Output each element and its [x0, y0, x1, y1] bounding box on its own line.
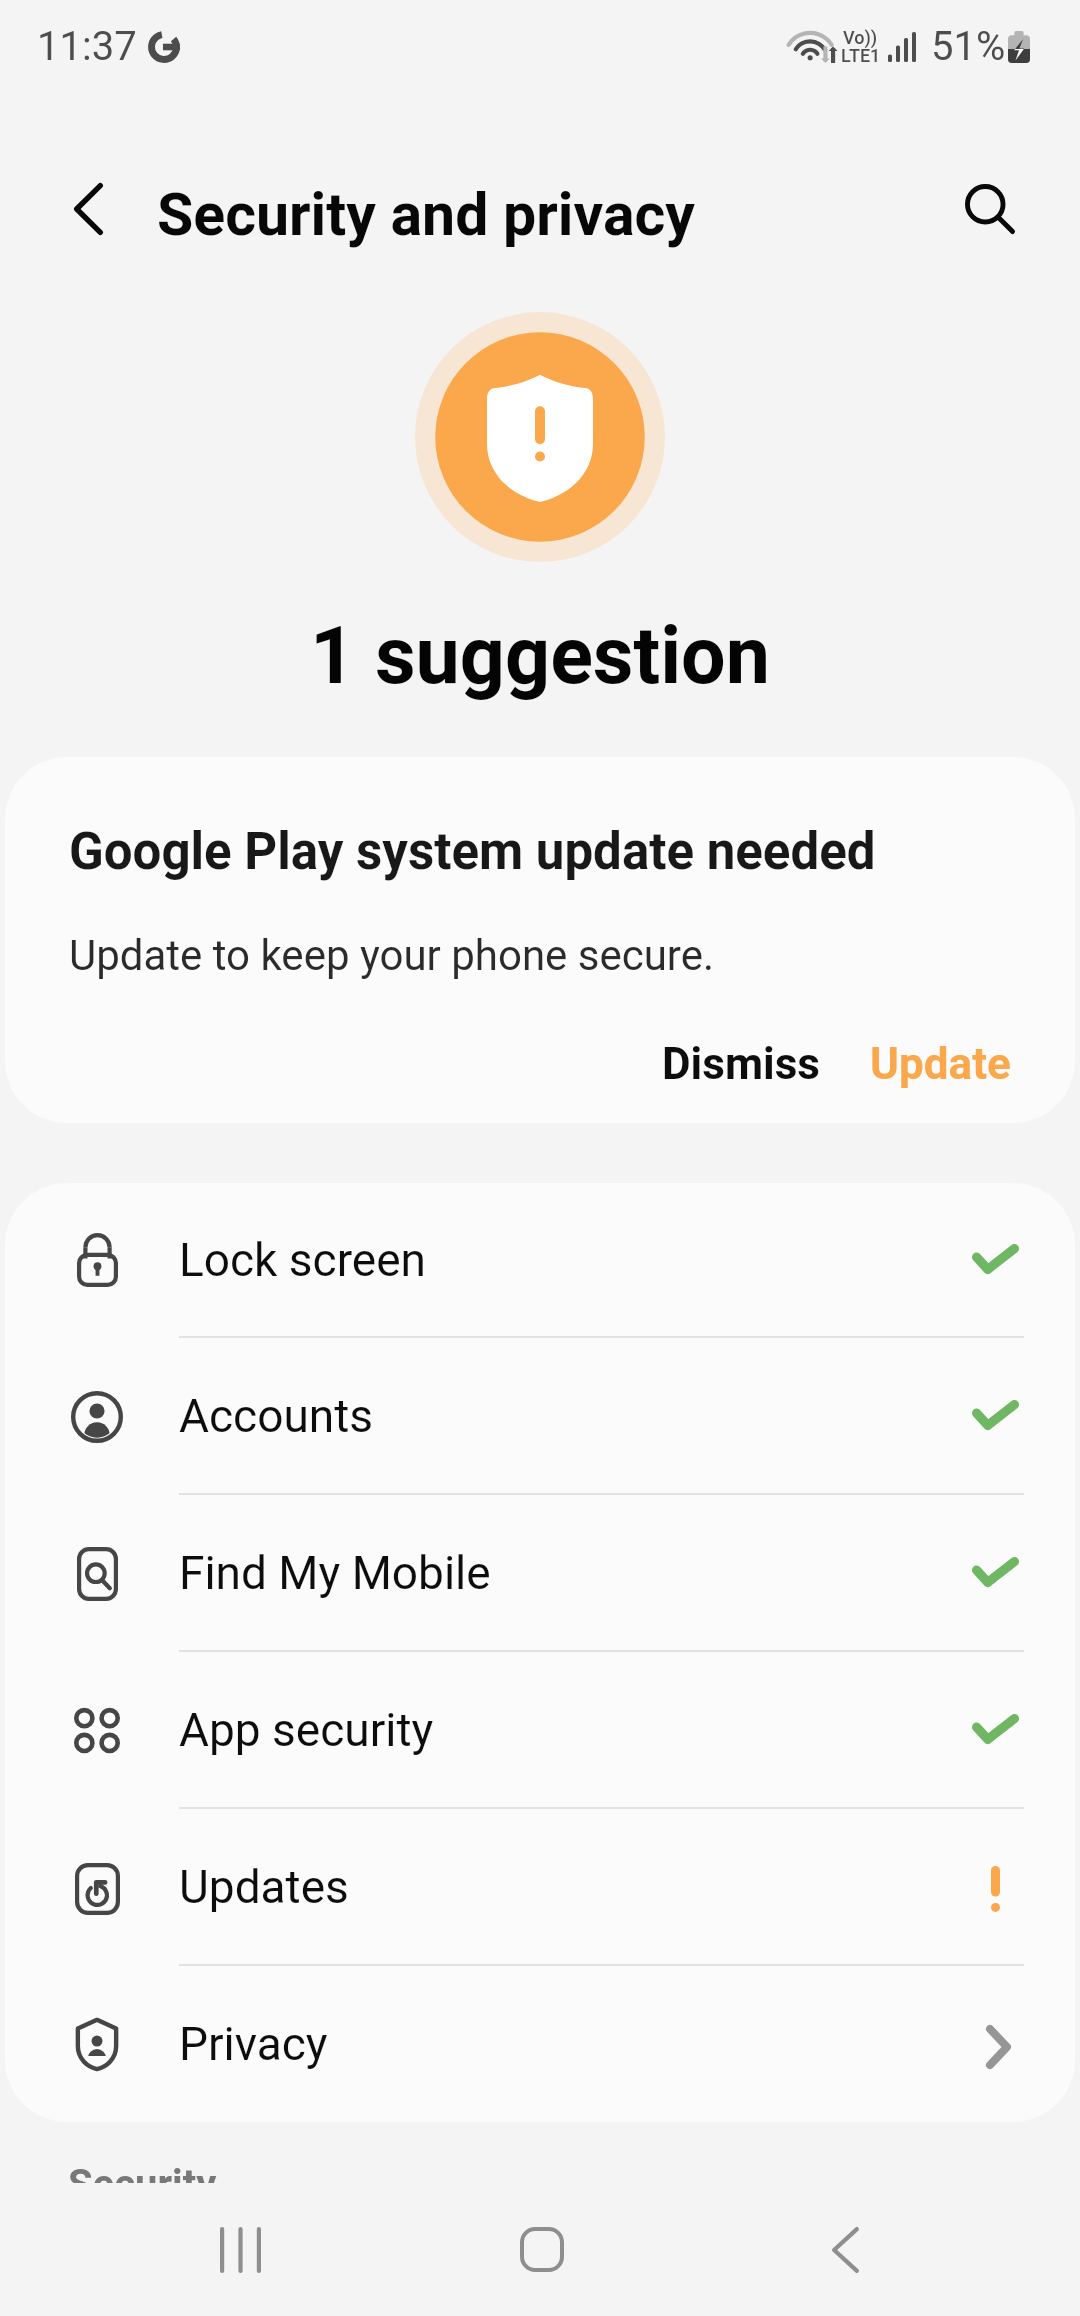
- staticText: Google Play system update needed: [69, 822, 876, 882]
- staticText: Security and privacy: [157, 180, 696, 249]
- staticText: Accounts: [179, 1389, 373, 1443]
- staticText: 11:37: [37, 23, 137, 70]
- staticText: Privacy: [179, 2017, 328, 2071]
- button[interactable]: Lock screen: [5, 1183, 1075, 1338]
- staticText: Updates: [179, 1860, 349, 1914]
- staticText: Find My Mobile: [179, 1546, 491, 1600]
- button[interactable]: Update: [840, 1019, 1041, 1109]
- staticText: Lock screen: [179, 1233, 426, 1287]
- button[interactable]: Back: [13, 134, 163, 284]
- staticText: Update: [870, 1038, 1011, 1090]
- staticText: Vo)): [843, 27, 878, 48]
- button[interactable]: Home: [472, 2183, 612, 2316]
- staticText: 51%: [931, 23, 1006, 70]
- button[interactable]: Accounts: [5, 1338, 1075, 1495]
- button[interactable]: Back: [775, 2183, 915, 2316]
- staticText: Dismiss: [662, 1038, 820, 1090]
- staticText: App security: [179, 1703, 434, 1757]
- button[interactable]: Updates: [5, 1809, 1075, 1966]
- button[interactable]: App security: [5, 1652, 1075, 1809]
- button[interactable]: Dismiss: [632, 1019, 850, 1109]
- staticText: 1 suggestion: [0, 610, 1080, 703]
- button[interactable]: Privacy: [5, 1966, 1075, 2121]
- staticText: Update to keep your phone secure.: [69, 931, 715, 980]
- button[interactable]: Find My Mobile: [5, 1495, 1075, 1652]
- button[interactable]: Recent apps: [170, 2183, 310, 2316]
- button[interactable]: Search: [915, 134, 1065, 284]
- staticText: LTE1: [841, 45, 881, 66]
- staticText: Security: [68, 2161, 217, 2208]
